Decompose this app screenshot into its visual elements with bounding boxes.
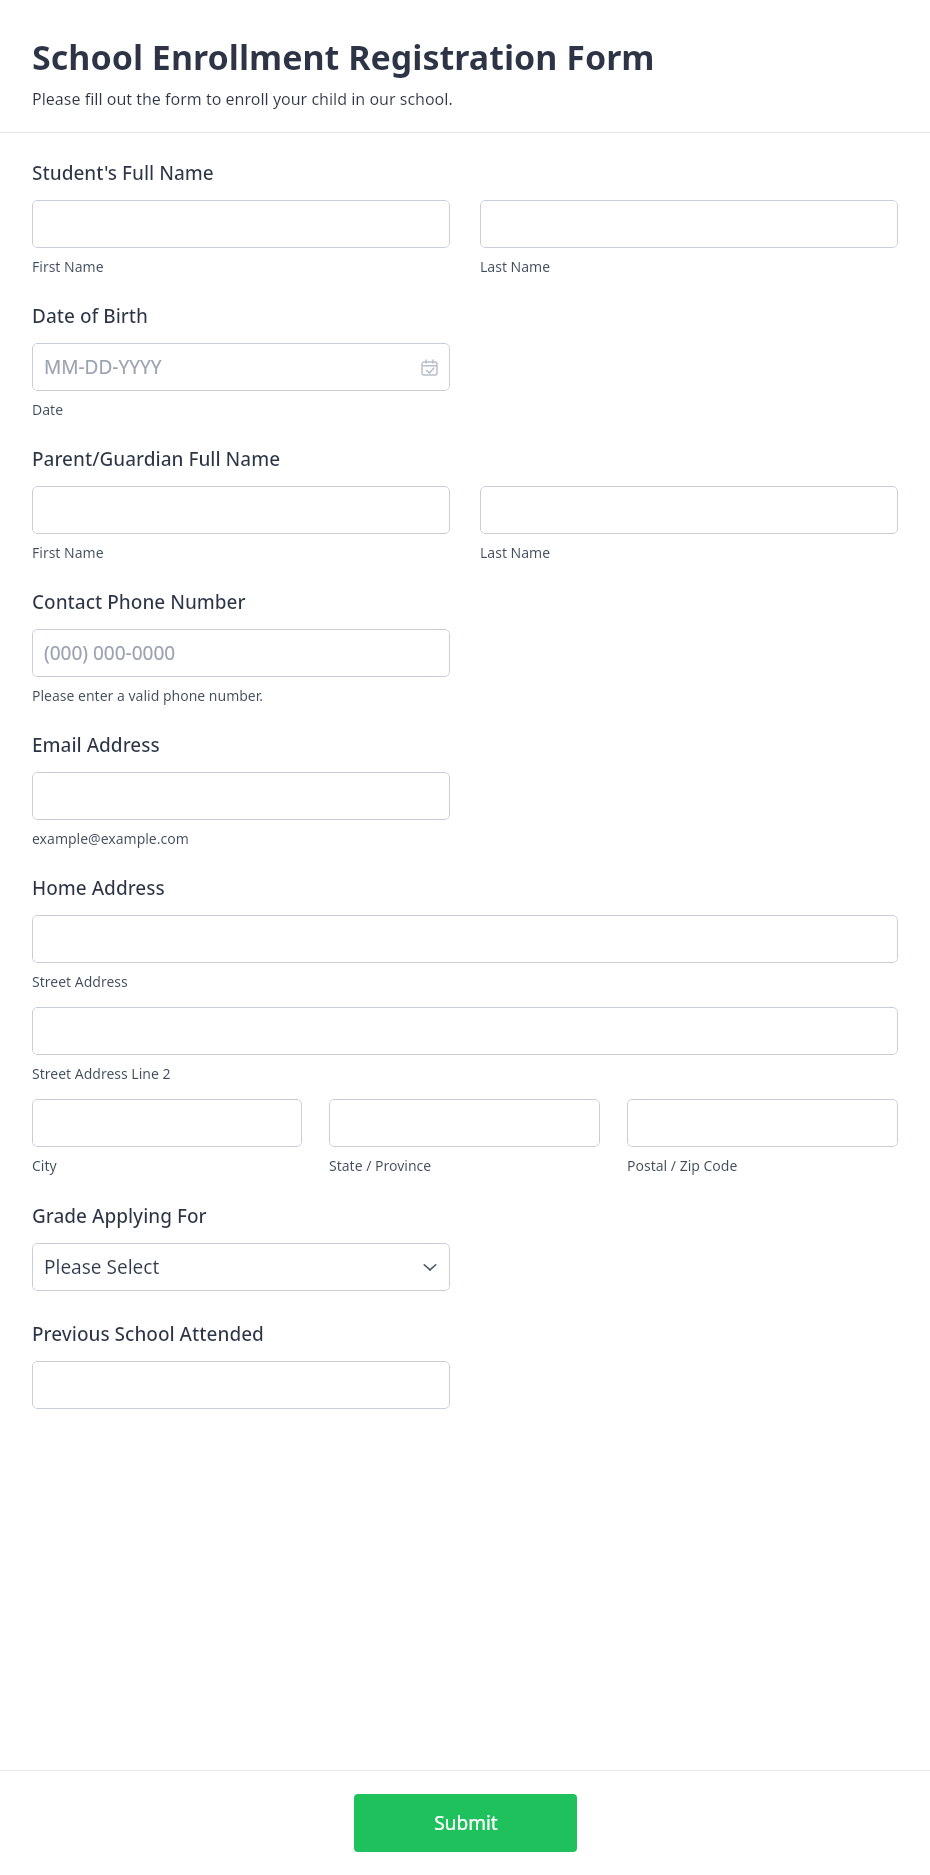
staticText: Postal / Zip Code: [627, 1156, 738, 1175]
button[interactable]: Parent last name: [480, 486, 898, 534]
button[interactable]: State or province: [329, 1099, 600, 1147]
button[interactable]: City: [32, 1099, 302, 1147]
staticText: example@example.com: [32, 829, 189, 848]
staticText: City: [32, 1156, 57, 1175]
staticText: Street Address Line 2: [32, 1064, 171, 1083]
button[interactable]: Previous school attended: [32, 1361, 450, 1409]
staticText: Email Address: [32, 732, 160, 758]
staticText: Home Address: [32, 875, 165, 901]
staticText: Date of Birth: [32, 303, 148, 329]
staticText: Please fill out the form to enroll your …: [32, 88, 453, 110]
staticText: Last Name: [480, 543, 551, 562]
button[interactable]: Phone number: [32, 629, 450, 677]
button[interactable]: Student last name: [480, 200, 898, 248]
staticText: Please Select: [44, 1254, 160, 1280]
staticText: Please enter a valid phone number.: [32, 686, 264, 705]
staticText: First Name: [32, 543, 104, 562]
staticText: Street Address: [32, 972, 128, 991]
button[interactable]: Parent first name: [32, 486, 450, 534]
button[interactable]: Grade applying for, Please Select: [32, 1243, 450, 1291]
staticText: State / Province: [329, 1156, 432, 1175]
staticText: First Name: [32, 257, 104, 276]
staticText: (000) 000-0000: [44, 640, 176, 666]
staticText: Student's Full Name: [32, 160, 214, 186]
button[interactable]: Submit: [354, 1794, 577, 1852]
button[interactable]: Street address: [32, 915, 898, 963]
staticText: Parent/Guardian Full Name: [32, 446, 281, 472]
staticText: Submit: [434, 1810, 498, 1836]
staticText: Previous School Attended: [32, 1321, 264, 1347]
button[interactable]: Date of birth: [32, 343, 450, 391]
staticText: School Enrollment Registration Form: [32, 34, 655, 80]
staticText: MM-DD-YYYY: [44, 354, 162, 380]
staticText: Last Name: [480, 257, 551, 276]
button[interactable]: Student first name: [32, 200, 450, 248]
button[interactable]: Email address: [32, 772, 450, 820]
staticText: Date: [32, 400, 64, 419]
button[interactable]: Street address line 2: [32, 1007, 898, 1055]
staticText: Grade Applying For: [32, 1203, 207, 1229]
button[interactable]: Postal or zip code: [627, 1099, 898, 1147]
staticText: Contact Phone Number: [32, 589, 246, 615]
